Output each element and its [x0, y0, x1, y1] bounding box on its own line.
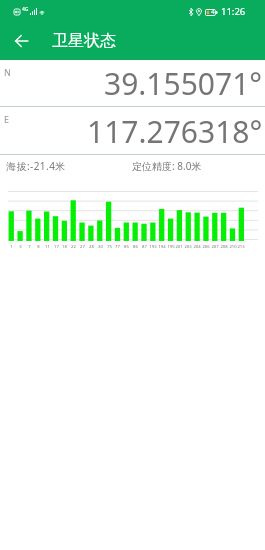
staticText: 18 — [62, 244, 67, 250]
staticText: 17 — [54, 244, 59, 250]
staticText: 7 — [28, 244, 31, 250]
staticText: 4 — [211, 8, 215, 16]
staticText: 210 — [229, 244, 237, 250]
staticText: 77 — [115, 244, 120, 250]
staticText: 22 — [71, 244, 76, 250]
staticText: 193 — [149, 244, 157, 250]
staticText: 195 — [167, 244, 175, 250]
staticText: 4G — [22, 6, 29, 13]
staticText: 1 — [10, 244, 13, 250]
staticText: 208 — [220, 244, 228, 250]
staticText: 194 — [158, 244, 166, 250]
staticText: 117.276318° — [87, 111, 263, 152]
staticText: 207 — [211, 244, 219, 250]
staticText: 206 — [202, 244, 210, 250]
button[interactable]: E — [0, 107, 265, 154]
staticText: 39.155071° — [104, 63, 263, 104]
staticText: 87 — [142, 244, 147, 250]
staticText: N — [4, 66, 11, 78]
button[interactable]: Back — [0, 22, 42, 60]
staticText: 85 — [124, 244, 129, 250]
staticText: 203 — [184, 244, 192, 250]
staticText: 201 — [175, 244, 183, 250]
staticText: 30 — [98, 244, 103, 250]
staticText: 定位精度: 8.0米 — [132, 159, 202, 173]
staticText: 86 — [133, 244, 138, 250]
staticText: 204 — [193, 244, 201, 250]
staticText: 28 — [89, 244, 94, 250]
staticText: 11:26 — [221, 5, 246, 18]
staticText: 27 — [80, 244, 85, 250]
button[interactable]: N — [0, 60, 265, 106]
staticText: 213 — [237, 244, 245, 250]
staticText: 卫星状态 — [52, 31, 116, 51]
staticText: 海拔:-21.4米 — [6, 159, 66, 173]
staticText: 8 — [37, 244, 40, 250]
staticText: E — [4, 113, 10, 125]
staticText: 3 — [19, 244, 22, 250]
staticText: 11 — [45, 244, 50, 250]
staticText: 75 — [107, 244, 112, 250]
